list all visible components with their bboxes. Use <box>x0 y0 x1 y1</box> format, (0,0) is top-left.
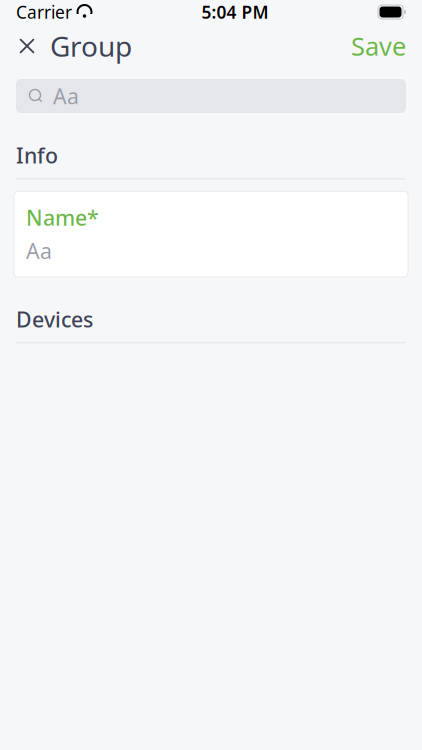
button[interactable]: Name* <box>14 191 408 277</box>
button[interactable]: Save <box>335 24 422 68</box>
staticText: Aa <box>26 237 52 265</box>
staticText: 5:04 PM <box>201 0 268 23</box>
staticText: Info <box>16 141 58 169</box>
staticText: Carrier <box>16 0 72 23</box>
staticText: Aa <box>53 82 79 110</box>
staticText: Save <box>351 29 406 63</box>
button[interactable]: Group <box>0 24 148 68</box>
button[interactable]: Aa <box>16 79 406 113</box>
staticText: Group <box>50 27 132 65</box>
staticText: Devices <box>16 305 93 333</box>
staticText: Name* <box>26 203 99 232</box>
